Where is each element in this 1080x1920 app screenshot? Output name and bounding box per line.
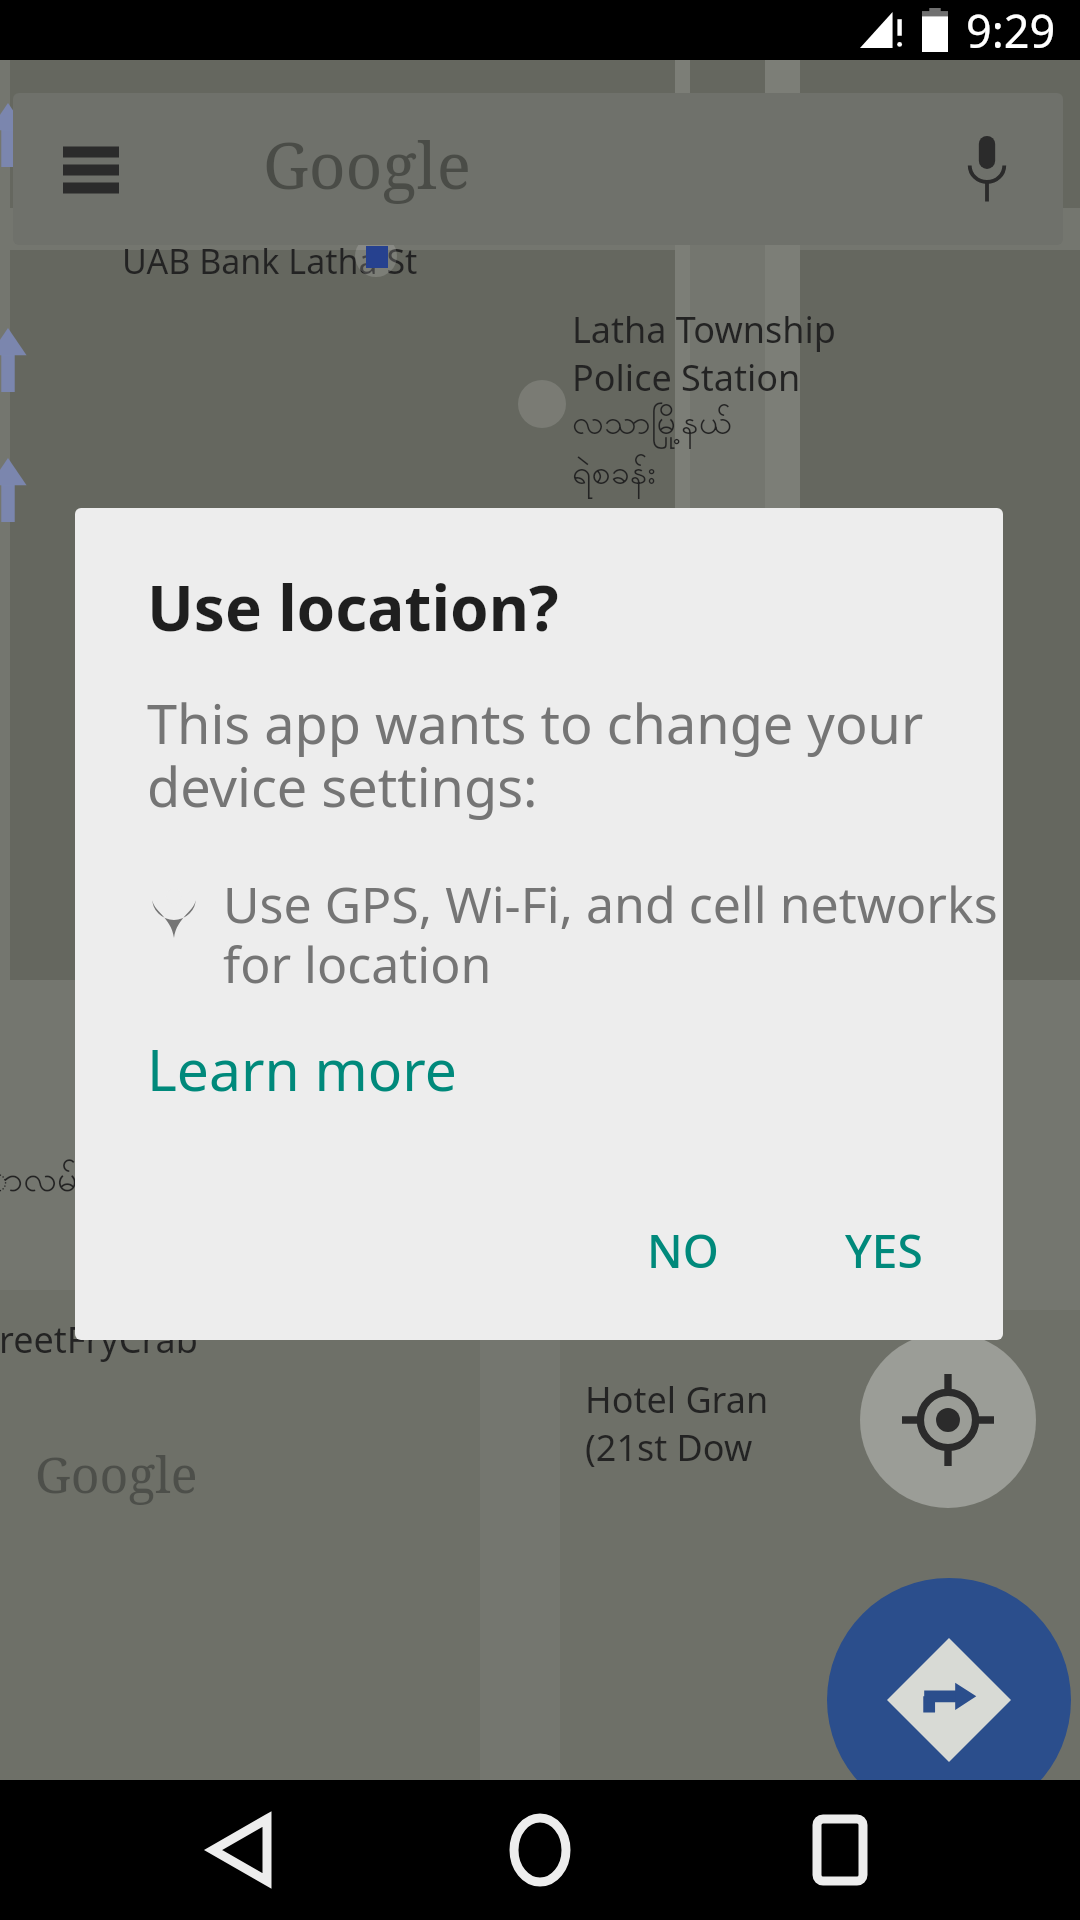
button[interactable]: Recent apps (785, 1795, 895, 1905)
staticText: treetFryCrab (0, 1315, 198, 1364)
button[interactable]: YES (815, 1199, 953, 1302)
staticText: လသာမြို့နယ် (572, 400, 732, 450)
staticText: (21st Dow (585, 1423, 753, 1472)
other: Voice search (963, 133, 1011, 205)
staticText: Use GPS, Wi-Fi, and cell networks for lo… (223, 870, 998, 998)
staticText: UAB Bank Latha St (122, 238, 418, 284)
staticText: This app wants to change your device set… (147, 686, 924, 823)
staticText: Google (35, 1440, 198, 1508)
button[interactable]: Directions (827, 1578, 1071, 1822)
button[interactable]: Learn more (135, 1020, 469, 1118)
button[interactable]: Home (485, 1795, 595, 1905)
staticText: Google (263, 121, 472, 208)
staticText: YES (845, 1219, 923, 1282)
button[interactable]: Menu (13, 93, 1063, 245)
button[interactable]: Back (185, 1795, 295, 1905)
staticText: NO (647, 1219, 719, 1282)
staticText: 9:29 (966, 0, 1056, 60)
staticText: Latha Township (572, 305, 836, 354)
button[interactable]: NO (617, 1199, 749, 1302)
staticText: Police Station (572, 353, 801, 402)
other: Menu (63, 144, 119, 194)
staticText: Hotel Gran (585, 1375, 769, 1424)
staticText: ရဲစခန်း (572, 450, 657, 500)
staticText: ာလမ်း (0, 1155, 87, 1208)
staticText: Learn more (147, 1030, 457, 1108)
staticText: Use location? (147, 565, 559, 649)
button[interactable]: My location (860, 1332, 1036, 1508)
